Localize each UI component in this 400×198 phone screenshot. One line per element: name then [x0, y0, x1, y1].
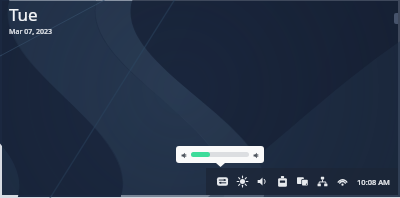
- button[interactable]: Cast screen: [294, 173, 311, 190]
- button[interactable]: Brightness: [234, 173, 251, 190]
- staticText: 10:08 AM: [357, 177, 390, 187]
- button[interactable]: Volume: [254, 173, 271, 190]
- button[interactable]: Network: [314, 173, 331, 190]
- button[interactable]: Switch input: [214, 173, 231, 190]
- staticText: Mar 07, 2023: [9, 27, 52, 37]
- staticText: Tue: [9, 3, 38, 26]
- button[interactable]: Show shelf: [394, 13, 398, 24]
- button[interactable]: Storage: [274, 173, 291, 190]
- button[interactable]: 10:08 AM: [356, 175, 391, 189]
- button[interactable]: Maximum volume: [252, 151, 260, 159]
- button[interactable]: Tue: [8, 3, 53, 37]
- button[interactable]: Mute: [180, 151, 188, 159]
- button[interactable]: Wi-Fi: [334, 173, 351, 190]
- button[interactable]: Volume slider: [191, 150, 249, 159]
